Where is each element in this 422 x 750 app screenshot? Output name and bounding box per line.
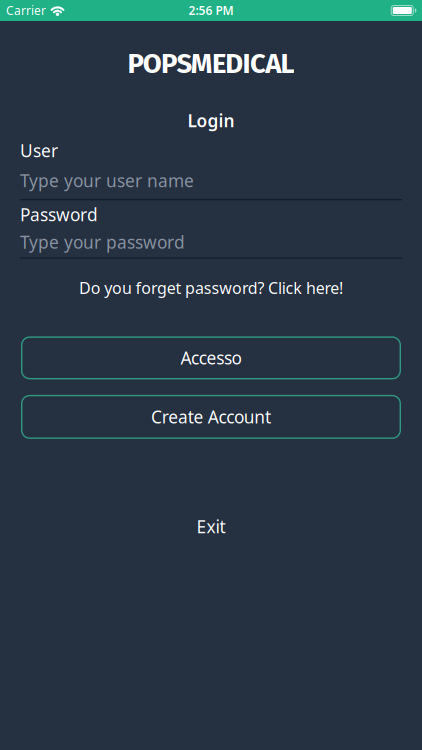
staticText: User [20, 139, 58, 162]
staticText: Type your user name [20, 169, 194, 192]
staticText: Type your password [20, 230, 185, 253]
staticText: POPSMEDICAL [127, 47, 294, 80]
staticText: Login [187, 109, 234, 132]
staticText: 2:56 PM [188, 2, 233, 18]
staticText: Password [20, 203, 98, 226]
button[interactable]: Create Account [21, 395, 401, 439]
staticText: Exit [196, 515, 225, 538]
button[interactable]: Accesso [21, 336, 401, 379]
button[interactable]: Exit [196, 515, 225, 538]
staticText: Carrier [6, 2, 46, 18]
button[interactable]: Do you forget password? Click here! [79, 277, 343, 298]
staticText: Create Account [151, 405, 271, 428]
staticText: Do you forget password? Click here! [79, 277, 343, 298]
staticText: Accesso [180, 346, 242, 369]
